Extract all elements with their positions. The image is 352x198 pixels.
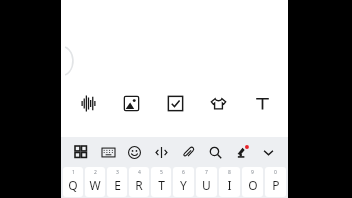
staticText: P	[272, 177, 280, 193]
button[interactable]: Text	[245, 86, 279, 120]
button[interactable]: Merch	[201, 86, 235, 120]
button[interactable]: 8	[219, 167, 240, 197]
button[interactable]: Search	[203, 140, 227, 164]
button[interactable]: Image	[114, 86, 148, 120]
staticText: Q	[68, 177, 78, 193]
button[interactable]: Stickers	[229, 140, 253, 164]
staticText: T	[158, 177, 165, 193]
staticText: O	[248, 177, 258, 193]
button[interactable]: 4	[129, 167, 149, 197]
button[interactable]: 6	[173, 167, 194, 197]
button[interactable]: Apps	[69, 140, 93, 164]
staticText: U	[202, 177, 211, 193]
staticText: I	[227, 177, 232, 193]
staticText: R	[135, 177, 143, 193]
staticText: 3	[116, 169, 119, 176]
staticText: 1	[72, 169, 75, 176]
button[interactable]: Audio	[71, 86, 105, 120]
button[interactable]: 2	[85, 167, 105, 197]
button[interactable]: Emoji	[122, 140, 146, 164]
staticText: 0	[274, 169, 277, 176]
button[interactable]: 0	[265, 167, 286, 197]
staticText: 9	[251, 169, 254, 176]
button[interactable]: Keyboard	[96, 140, 120, 164]
staticText: W	[89, 177, 101, 193]
button[interactable]: 3	[107, 167, 127, 197]
staticText: E	[114, 177, 121, 193]
staticText: 7	[205, 169, 208, 176]
staticText: 2	[94, 169, 97, 176]
button[interactable]: Poll	[158, 86, 192, 120]
button[interactable]: 5	[151, 167, 171, 197]
staticText: 8	[228, 169, 231, 176]
button[interactable]: 9	[242, 167, 263, 197]
button[interactable]: 7	[196, 167, 217, 197]
staticText: Y	[180, 177, 187, 193]
staticText: 4	[138, 169, 141, 176]
button[interactable]: Clipboard	[176, 140, 200, 164]
button[interactable]: 1	[63, 167, 83, 197]
button[interactable]: Collapse	[256, 140, 280, 164]
staticText: 5	[160, 169, 163, 176]
button[interactable]: Translate	[149, 140, 173, 164]
staticText: 6	[182, 169, 185, 176]
